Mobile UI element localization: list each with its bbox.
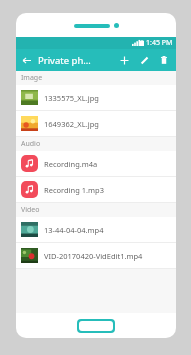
staticText: Private ph… <box>38 54 91 67</box>
staticText: Image <box>21 73 43 83</box>
staticText: Audio <box>21 139 41 149</box>
button[interactable]: Recording 1.mp3 <box>16 177 176 202</box>
button[interactable]: Recording.m4a <box>16 151 176 176</box>
button[interactable]: Home <box>79 321 113 331</box>
button[interactable]: Delete <box>154 50 174 70</box>
staticText: 13-44-04-04.mp4 <box>44 225 104 235</box>
button[interactable]: VID-20170420-VidEdit1.mp4 <box>16 243 176 268</box>
staticText: Video <box>21 205 40 215</box>
button[interactable]: 13-44-04-04.mp4 <box>16 217 176 242</box>
staticText: Recording 1.mp3 <box>44 185 104 195</box>
button[interactable]: Back <box>16 50 36 70</box>
button[interactable]: 1335575_XL.jpg <box>16 85 176 110</box>
staticText: 1335575_XL.jpg <box>44 93 99 103</box>
button[interactable]: Add <box>114 50 134 70</box>
staticText: Recording.m4a <box>44 159 98 169</box>
button[interactable]: Edit <box>134 50 154 70</box>
staticText: 1649362_XL.jpg <box>44 119 99 129</box>
staticText: 1:45 PM <box>146 38 173 48</box>
button[interactable]: 1649362_XL.jpg <box>16 111 176 136</box>
staticText: VID-20170420-VidEdit1.mp4 <box>44 251 143 261</box>
